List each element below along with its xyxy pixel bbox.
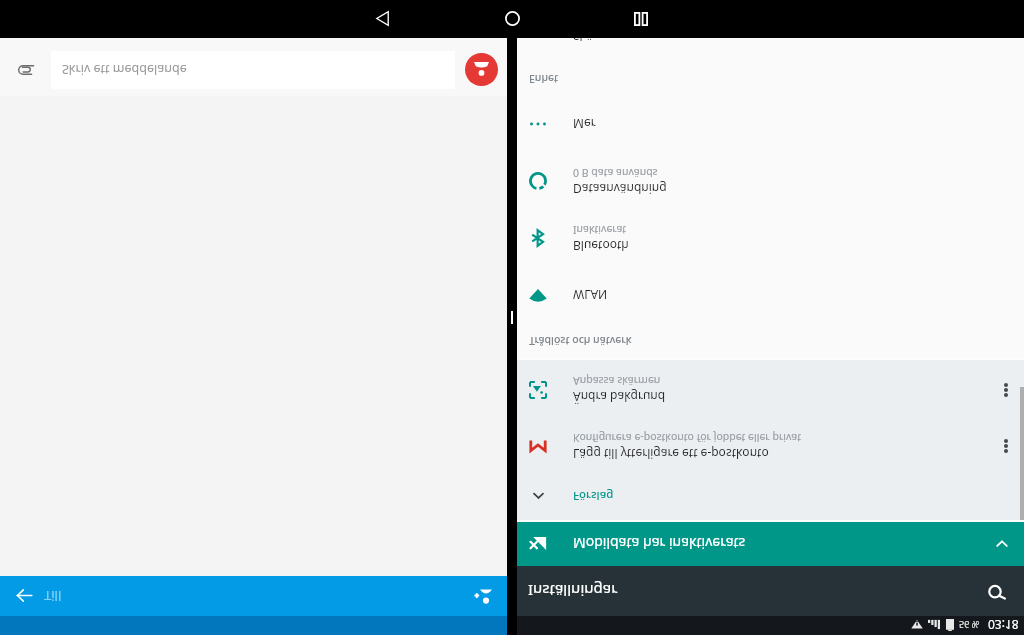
- button[interactable]: WLAN: [517, 267, 1024, 324]
- button[interactable]: Fler alternativ: [989, 373, 1023, 407]
- staticText: Inställningar: [528, 581, 618, 601]
- staticText: Mer: [573, 116, 596, 132]
- staticText: Förslag: [573, 488, 614, 504]
- staticText: Enhet: [529, 72, 559, 86]
- button[interactable]: Skriv ett meddelande: [51, 51, 455, 89]
- button[interactable]: Senaste appar: [619, 0, 663, 38]
- button[interactable]: Lägg till ytterligare ett e-postkonto: [517, 420, 1024, 473]
- button[interactable]: Förslag: [517, 473, 1024, 520]
- staticText: Skärm: [573, 28, 609, 44]
- staticText: Skriv ett meddelande: [62, 61, 187, 78]
- button[interactable]: Startskärm: [490, 0, 534, 38]
- staticText: 03:18: [988, 617, 1019, 633]
- staticText: Trådlöst och nätverk: [529, 334, 632, 348]
- button[interactable]: Lägg till mottagare: [466, 578, 502, 614]
- button[interactable]: Fler alternativ: [989, 429, 1023, 463]
- staticText: Mobildata har inaktiverats: [573, 534, 746, 553]
- button[interactable]: Ändra bakgrund: [517, 360, 1024, 420]
- button[interactable]: Tillbaka: [6, 578, 42, 614]
- button[interactable]: Dataanvändning: [517, 153, 1024, 210]
- staticText: Bluetooth: [573, 238, 629, 254]
- staticText: Lägg till ytterligare ett e-postkonto: [573, 446, 769, 462]
- staticText: 0 B data används: [573, 166, 658, 180]
- button[interactable]: Tillbaka: [360, 0, 404, 38]
- staticText: Inaktiverat: [573, 223, 627, 237]
- staticText: WLAN: [573, 287, 608, 303]
- button[interactable]: Bluetooth: [517, 210, 1024, 267]
- button[interactable]: Sök: [976, 571, 1016, 611]
- staticText: Konfigurera e-postkonto för jobbet eller…: [573, 431, 801, 445]
- button[interactable]: Skärm: [517, 8, 1024, 65]
- button[interactable]: Välj mottagare: [465, 53, 498, 86]
- staticText: Dataanvändning: [573, 181, 667, 197]
- button[interactable]: Mobildata har inaktiverats: [517, 522, 1024, 566]
- staticText: 56 %: [959, 619, 980, 631]
- staticText: Ändra bakgrund: [573, 389, 666, 405]
- button[interactable]: Bifoga: [13, 57, 39, 83]
- staticText: Anpassa skärmen: [573, 374, 661, 388]
- staticText: Till: [44, 587, 62, 605]
- button[interactable]: Mer: [517, 96, 1024, 153]
